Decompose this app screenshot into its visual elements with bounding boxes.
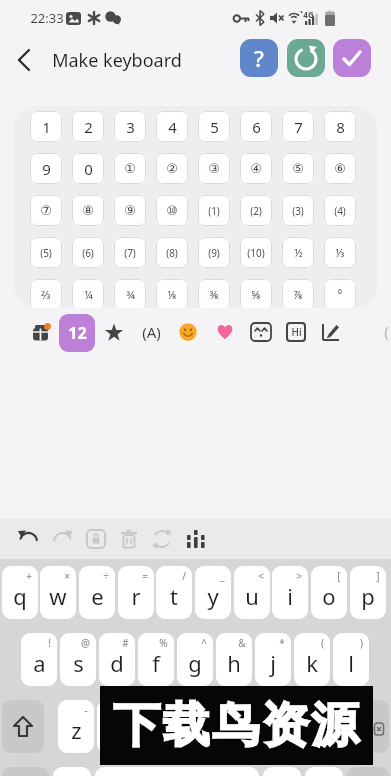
staticText: ^	[201, 636, 207, 650]
staticText: ⅞	[293, 287, 303, 302]
button[interactable]: x	[97, 700, 133, 753]
button[interactable]: ⑧	[72, 195, 104, 226]
button[interactable]	[316, 314, 346, 350]
button[interactable]: (10)	[240, 237, 272, 268]
button[interactable]: 7	[282, 111, 314, 142]
button[interactable]: u	[234, 566, 270, 619]
button[interactable]: s	[60, 633, 96, 686]
button[interactable]	[173, 314, 203, 350]
button[interactable]: r	[118, 566, 154, 619]
button[interactable]	[99, 314, 129, 350]
button[interactable]	[2, 700, 44, 753]
button[interactable]: (A)	[136, 314, 166, 350]
button[interactable]: 2	[72, 111, 104, 142]
button[interactable]: ⁰	[324, 279, 356, 308]
button[interactable]	[210, 314, 240, 350]
button[interactable]: ⑨	[114, 195, 146, 226]
button[interactable]	[13, 523, 45, 555]
button[interactable]	[146, 523, 178, 555]
button[interactable]: ⅞	[282, 279, 314, 308]
button[interactable]: ⑦	[30, 195, 62, 226]
button[interactable]: n	[253, 700, 289, 753]
button[interactable]: ⅛	[156, 279, 188, 308]
button[interactable]: l	[333, 633, 369, 686]
button[interactable]: z	[58, 700, 94, 753]
button[interactable]: e	[79, 566, 115, 619]
button[interactable]: ⅜	[198, 279, 230, 308]
staticText: #	[122, 636, 129, 650]
button[interactable]	[246, 314, 276, 350]
button[interactable]: 8	[324, 111, 356, 142]
button[interactable]: d	[99, 633, 135, 686]
button[interactable]: 3	[114, 111, 146, 142]
button[interactable]: (5)	[30, 237, 62, 268]
button[interactable]	[287, 39, 325, 77]
button[interactable]: ⅓	[324, 237, 356, 268]
button[interactable]: ⅔	[30, 279, 62, 308]
button[interactable]: ③	[198, 153, 230, 184]
button[interactable]: 5	[198, 111, 230, 142]
button[interactable]: g	[177, 633, 213, 686]
button[interactable]: w	[40, 566, 76, 619]
button[interactable]	[263, 767, 301, 776]
button[interactable]: (4)	[324, 195, 356, 226]
button[interactable]: ④	[240, 153, 272, 184]
button[interactable]: (3)	[282, 195, 314, 226]
button[interactable]: (8)	[156, 237, 188, 268]
staticText: ¾	[126, 287, 135, 302]
button[interactable]: k	[294, 633, 330, 686]
button[interactable]: ⑩	[156, 195, 188, 226]
button[interactable]: ?	[240, 39, 278, 77]
button[interactable]: 9	[30, 153, 62, 184]
button[interactable]: (6)	[72, 237, 104, 268]
button[interactable]: c	[136, 700, 172, 753]
button[interactable]: y	[195, 566, 231, 619]
button[interactable]	[305, 767, 343, 776]
button[interactable]: a	[21, 633, 57, 686]
button[interactable]: ½	[282, 237, 314, 268]
button[interactable]	[113, 523, 145, 555]
button[interactable]	[2, 767, 49, 776]
staticText: s	[73, 648, 84, 678]
button[interactable]: (1)	[198, 195, 230, 226]
button[interactable]: p	[350, 566, 386, 619]
button[interactable]	[331, 700, 389, 753]
button[interactable]: j	[255, 633, 291, 686]
button[interactable]: ⅝	[240, 279, 272, 308]
button[interactable]: i	[272, 566, 308, 619]
button[interactable]	[347, 767, 389, 776]
button[interactable]: 12	[59, 314, 95, 352]
button[interactable]: o	[311, 566, 347, 619]
button[interactable]	[95, 767, 259, 776]
button[interactable]: b	[214, 700, 250, 753]
button[interactable]: ①	[114, 153, 146, 184]
button[interactable]: q	[2, 566, 38, 619]
button[interactable]: 0	[72, 153, 104, 184]
button[interactable]: 6	[240, 111, 272, 142]
button[interactable]	[53, 767, 91, 776]
button[interactable]: (2)	[240, 195, 272, 226]
button[interactable]: Hi	[281, 314, 311, 350]
button[interactable]: ¼	[72, 279, 104, 308]
button[interactable]: t	[156, 566, 192, 619]
button[interactable]	[5, 40, 45, 80]
button[interactable]	[333, 39, 371, 77]
button[interactable]: 1	[30, 111, 62, 142]
button[interactable]: f	[138, 633, 174, 686]
button[interactable]	[26, 314, 56, 350]
button[interactable]: h	[216, 633, 252, 686]
staticText: (8)	[166, 246, 178, 260]
button[interactable]	[80, 523, 112, 555]
button[interactable]: ⑤	[282, 153, 314, 184]
button[interactable]: m	[292, 700, 328, 753]
button[interactable]: 4	[156, 111, 188, 142]
button[interactable]: (7)	[114, 237, 146, 268]
button[interactable]: ⑥	[324, 153, 356, 184]
button[interactable]	[180, 523, 212, 555]
button[interactable]	[46, 523, 78, 555]
button[interactable]: ¾	[114, 279, 146, 308]
button[interactable]: ②	[156, 153, 188, 184]
button[interactable]: (9)	[198, 237, 230, 268]
staticText: m	[300, 715, 321, 745]
button[interactable]: v	[175, 700, 211, 753]
